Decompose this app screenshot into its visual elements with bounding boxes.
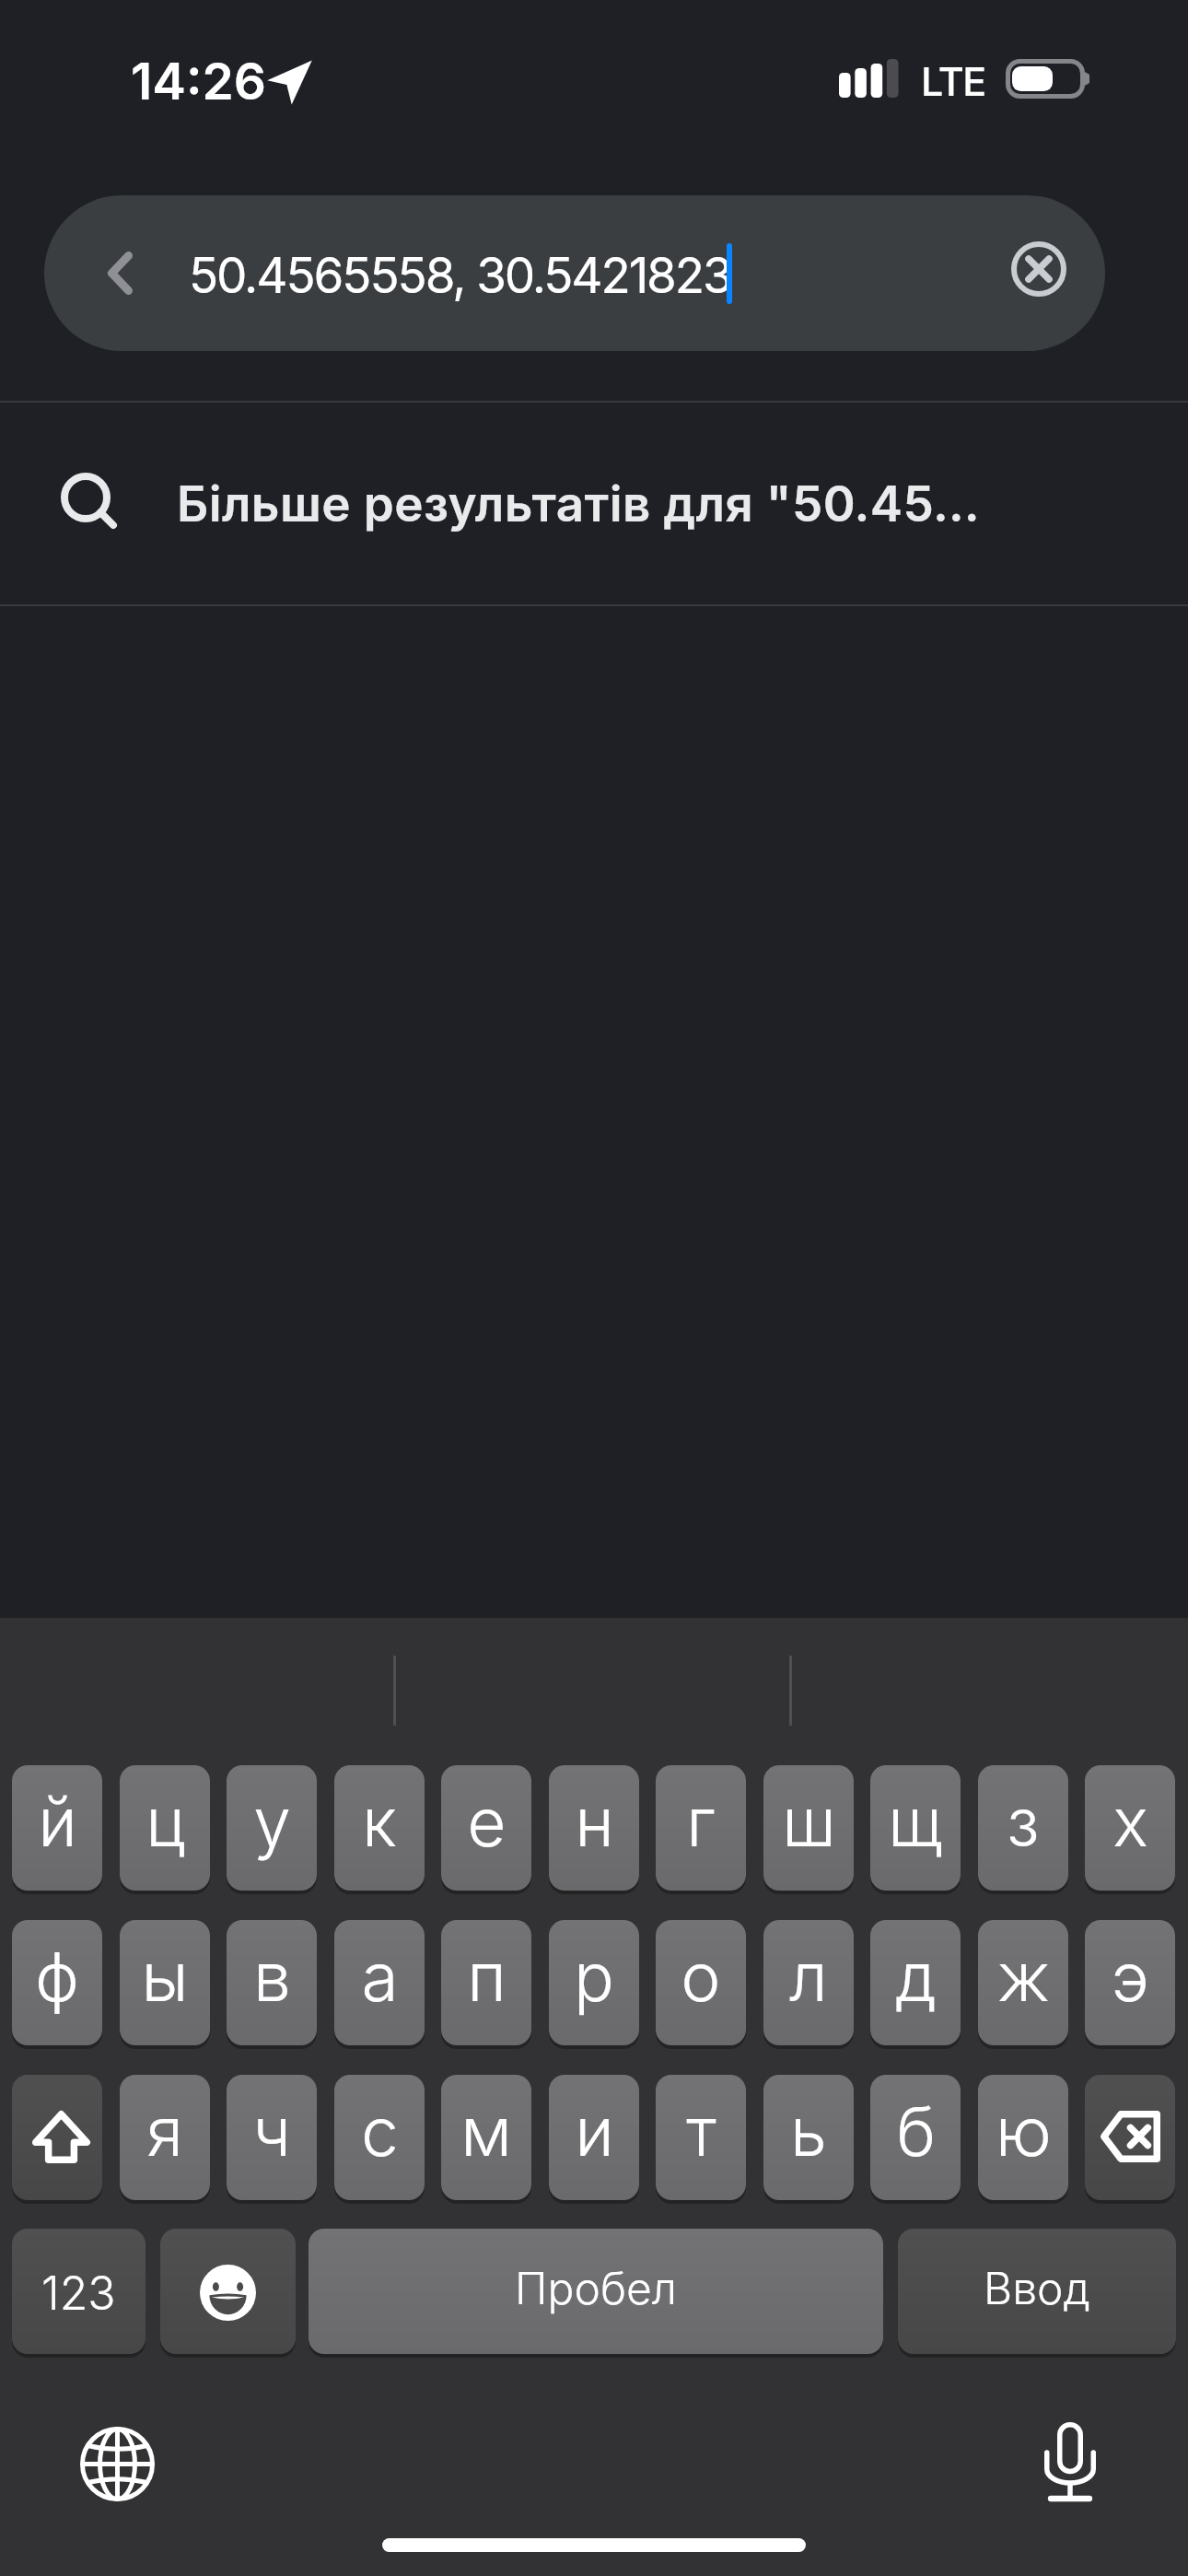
staticText: Більше результатів для "50.45… — [177, 474, 981, 533]
button[interactable]: б — [870, 2074, 961, 2205]
button[interactable]: й — [12, 1764, 102, 1895]
staticText: а — [361, 1936, 399, 2017]
staticText: ш — [782, 1781, 836, 1862]
staticText: 50.4565558, 30.5421823 — [189, 246, 731, 305]
staticText: ю — [996, 2090, 1052, 2172]
staticText: п — [467, 1936, 507, 2017]
button[interactable]: ч — [227, 2074, 317, 2205]
button[interactable]: 50.4565558, 30.5421823 — [44, 195, 1105, 351]
staticText: д — [895, 1936, 937, 2017]
staticText: 123 — [41, 2266, 116, 2321]
staticText: Ввод — [984, 2261, 1090, 2314]
staticText: й — [38, 1781, 77, 1862]
button[interactable]: м — [441, 2074, 531, 2205]
button[interactable]: а — [334, 1919, 425, 2050]
button[interactable]: в — [227, 1919, 317, 2050]
button[interactable]: Dictate — [1044, 2422, 1096, 2501]
staticText: щ — [888, 1781, 943, 1862]
button[interactable]: 123 — [12, 2228, 146, 2359]
button[interactable]: Clear text — [1011, 241, 1066, 297]
button[interactable]: Emoji — [160, 2228, 296, 2359]
staticText: б — [896, 2090, 936, 2172]
button[interactable]: э — [1085, 1919, 1175, 2050]
staticText: Пробел — [515, 2261, 678, 2314]
staticText: LTE — [921, 57, 985, 105]
staticText: э — [1112, 1936, 1149, 2017]
staticText: л — [789, 1936, 828, 2017]
staticText: с — [361, 2090, 399, 2172]
staticText: г — [686, 1781, 716, 1862]
button[interactable]: к — [334, 1764, 425, 1895]
button[interactable]: ф — [12, 1919, 102, 2050]
staticText: м — [460, 2090, 512, 2172]
button[interactable]: е — [441, 1764, 531, 1895]
button[interactable]: н — [549, 1764, 639, 1895]
staticText: ж — [997, 1936, 1050, 2017]
staticText: ц — [146, 1781, 185, 1862]
button[interactable]: Більше результатів для "50.45… — [0, 402, 1188, 606]
staticText: х — [1112, 1781, 1148, 1862]
staticText: н — [575, 1781, 614, 1862]
button[interactable]: ь — [763, 2074, 854, 2205]
button[interactable]: ц — [120, 1764, 210, 1895]
button[interactable]: р — [549, 1919, 639, 2050]
button[interactable]: и — [549, 2074, 639, 2205]
button[interactable]: г — [656, 1764, 746, 1895]
button[interactable]: о — [656, 1919, 746, 2050]
staticText: ы — [141, 1936, 189, 2017]
button[interactable]: т — [656, 2074, 746, 2205]
button[interactable]: с — [334, 2074, 425, 2205]
staticText: з — [1007, 1781, 1040, 1862]
button[interactable]: д — [870, 1919, 961, 2050]
button[interactable]: х — [1085, 1764, 1175, 1895]
staticText: и — [575, 2090, 614, 2172]
button[interactable]: щ — [870, 1764, 961, 1895]
staticText: ч — [252, 2090, 291, 2172]
button[interactable]: я — [120, 2074, 210, 2205]
staticText: у — [253, 1781, 291, 1862]
button[interactable]: л — [763, 1919, 854, 2050]
button[interactable]: ж — [978, 1919, 1068, 2050]
staticText: ь — [790, 2090, 827, 2172]
button[interactable]: Next keyboard — [80, 2427, 155, 2501]
staticText: к — [362, 1781, 397, 1862]
staticText: т — [686, 2090, 716, 2172]
button[interactable]: Backspace — [1085, 2074, 1175, 2205]
button[interactable]: ш — [763, 1764, 854, 1895]
button[interactable]: Пробел — [309, 2228, 883, 2359]
button[interactable]: Shift — [12, 2074, 102, 2205]
staticText: р — [574, 1936, 614, 2017]
button[interactable]: ю — [978, 2074, 1068, 2205]
button[interactable]: у — [227, 1764, 317, 1895]
staticText: 14:26 — [131, 51, 266, 112]
staticText: в — [253, 1936, 291, 2017]
staticText: я — [146, 2090, 183, 2172]
staticText: о — [681, 1936, 721, 2017]
button[interactable]: ы — [120, 1919, 210, 2050]
button[interactable]: Ввод — [898, 2228, 1176, 2359]
button[interactable]: п — [441, 1919, 531, 2050]
staticText: е — [467, 1781, 507, 1862]
button[interactable]: з — [978, 1764, 1068, 1895]
staticText: ф — [35, 1936, 79, 2017]
